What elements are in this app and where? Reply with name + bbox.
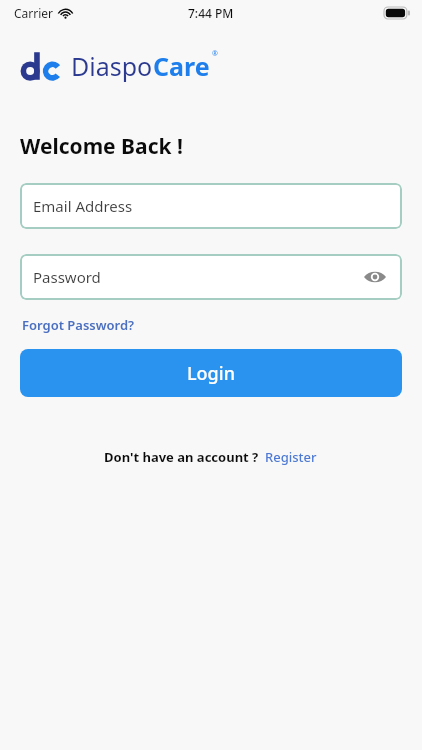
- staticText: Login: [187, 361, 235, 386]
- button[interactable]: Login: [20, 349, 402, 397]
- staticText: Diaspo: [71, 49, 153, 83]
- button[interactable]: Register: [264, 447, 318, 467]
- button[interactable]: Password: [20, 254, 402, 300]
- staticText: Welcome Back !: [20, 132, 183, 161]
- button[interactable]: Email Address: [20, 183, 402, 229]
- staticText: Register: [265, 448, 317, 466]
- staticText: Password: [33, 267, 101, 287]
- staticText: Care: [153, 49, 210, 83]
- staticText: Don't have an account ?: [104, 448, 259, 466]
- staticText: Carrier: [14, 5, 54, 21]
- staticText: Email Address: [33, 196, 133, 216]
- button[interactable]: Forgot Password?: [20, 314, 137, 336]
- staticText: ®: [212, 49, 218, 59]
- button[interactable]: Show password: [362, 264, 388, 290]
- staticText: Forgot Password?: [22, 316, 135, 334]
- staticText: 7:44 PM: [188, 5, 234, 21]
